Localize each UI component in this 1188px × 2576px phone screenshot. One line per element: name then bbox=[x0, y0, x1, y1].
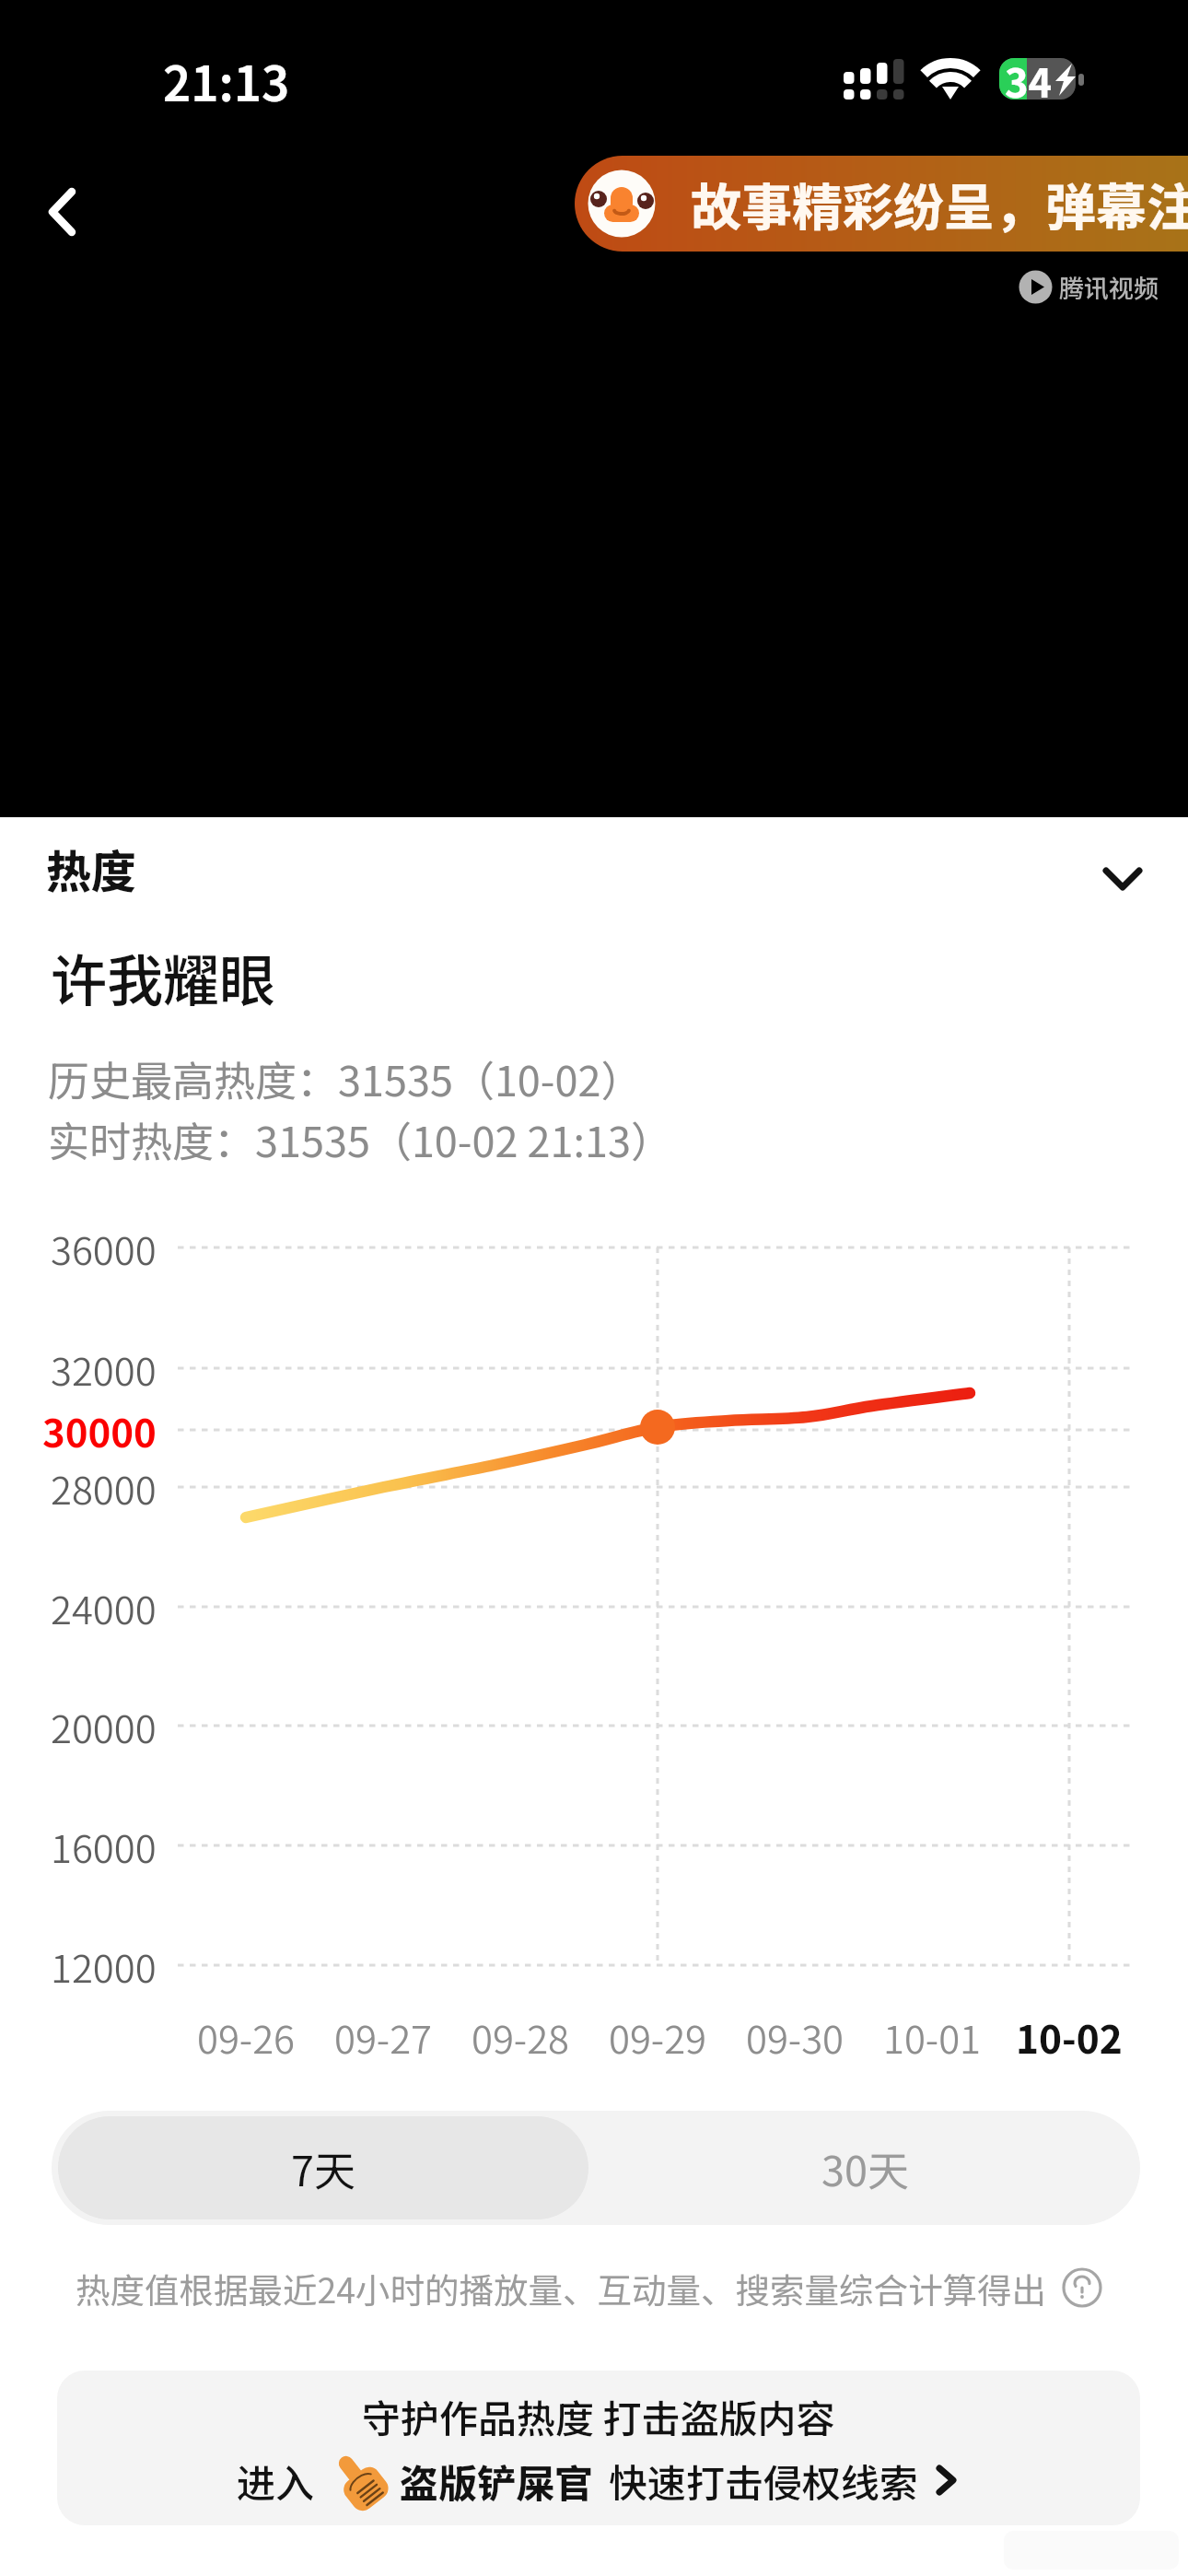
staticText: 12000 bbox=[51, 1938, 157, 1993]
button[interactable]: Tencent Video bbox=[1019, 269, 1159, 305]
button[interactable]: 热度值根据最近24小时的播放量、互动量、搜索量综合计算得出 bbox=[76, 2263, 1102, 2313]
staticText: 09-28 bbox=[472, 2008, 570, 2059]
staticText: 实时热度：31535（10-02 21:13） bbox=[48, 1109, 672, 1169]
staticText: 10-02 bbox=[1016, 2008, 1123, 2059]
staticText: 许我耀眼 bbox=[51, 936, 276, 1017]
staticText: 36000 bbox=[51, 1220, 157, 1275]
staticText: 热度值根据最近24小时的播放量、互动量、搜索量综合计算得出 bbox=[76, 2263, 1047, 2313]
staticText: 7天 bbox=[291, 2138, 355, 2198]
staticText: 进入 bbox=[237, 2453, 315, 2509]
staticText: 09-26 bbox=[197, 2008, 296, 2059]
staticText: 09-30 bbox=[746, 2008, 844, 2059]
staticText: 09-27 bbox=[334, 2008, 433, 2059]
staticText: 盗版铲屎官 bbox=[400, 2453, 594, 2509]
button[interactable]: Back bbox=[13, 162, 112, 262]
staticText: 21:13 bbox=[163, 46, 290, 115]
staticText: 热度 bbox=[46, 836, 137, 901]
staticText: 34 bbox=[1005, 52, 1053, 109]
button[interactable]: 7天 bbox=[58, 2116, 588, 2219]
staticText: 16000 bbox=[51, 1818, 157, 1873]
button[interactable]: 故事精彩纷呈，弹幕注 bbox=[575, 156, 1188, 252]
staticText: 历史最高热度：31535（10-02） bbox=[48, 1048, 643, 1108]
button[interactable]: 30天 bbox=[597, 2116, 1134, 2219]
staticText: 28000 bbox=[51, 1459, 157, 1515]
staticText: 32000 bbox=[51, 1341, 157, 1396]
staticText: 30天 bbox=[821, 2138, 909, 2198]
staticText: 10-01 bbox=[883, 2008, 982, 2059]
staticText: 24000 bbox=[51, 1579, 157, 1634]
staticText: 腾讯视频 bbox=[1059, 269, 1159, 305]
staticText: 20000 bbox=[51, 1698, 157, 1753]
staticText: 快速打击侵权线索 bbox=[609, 2453, 919, 2509]
staticText: 故事精彩纷呈，弹幕注 bbox=[691, 167, 1188, 240]
button[interactable]: 守护作品热度 打击盗版内容 bbox=[57, 2371, 1140, 2525]
button[interactable]: 热度 bbox=[0, 817, 1188, 919]
staticText: 09-29 bbox=[609, 2008, 707, 2059]
staticText: 30000 bbox=[42, 1402, 157, 1458]
staticText: 守护作品热度 打击盗版内容 bbox=[362, 2388, 835, 2444]
